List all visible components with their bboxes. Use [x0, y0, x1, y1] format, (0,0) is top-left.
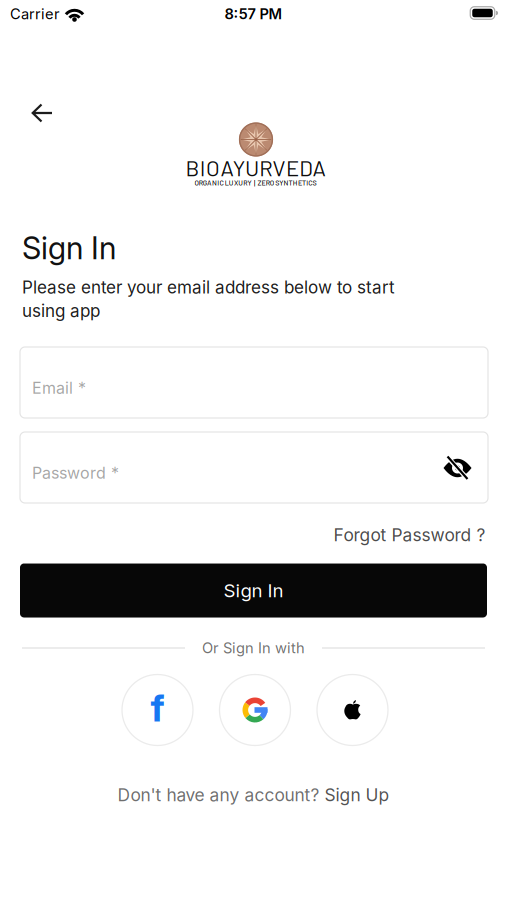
staticText: Forgot Password ? — [333, 524, 485, 545]
button[interactable]: Sign in with Google — [219, 674, 290, 745]
button[interactable]: Sign in with Facebook — [122, 674, 193, 745]
button[interactable]: Forgot Password ? — [333, 524, 485, 545]
staticText: Sign In — [223, 579, 283, 602]
button[interactable]: Back — [11, 93, 62, 132]
staticText: ORGANIC LUXURY | ZERO SYNTHETICS — [194, 178, 316, 187]
staticText: Password * — [32, 463, 119, 483]
staticText: Don't have any account? — [117, 784, 324, 805]
staticText: Or Sign In with — [202, 639, 305, 657]
button[interactable]: Sign In — [20, 563, 487, 617]
button[interactable]: Show password — [443, 457, 472, 478]
staticText: Sign Up — [324, 784, 389, 805]
staticText: Please enter your email address below to… — [22, 277, 395, 321]
staticText: BIOAYURVEDA — [185, 154, 325, 181]
staticText: Email * — [32, 378, 86, 398]
staticText: Carrier — [10, 5, 60, 23]
button[interactable]: Sign in with Apple — [317, 674, 388, 745]
staticText: 8:57 PM — [224, 5, 282, 23]
staticText: f — [150, 686, 164, 730]
button[interactable]: Sign Up — [324, 784, 389, 805]
staticText: Sign In — [22, 230, 116, 266]
